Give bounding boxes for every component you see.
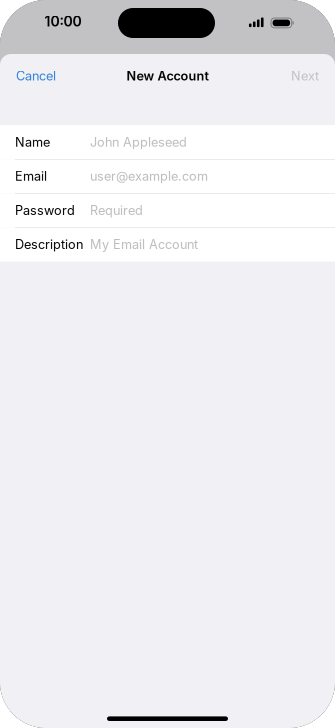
staticText: Description bbox=[15, 237, 83, 252]
staticText: Email bbox=[15, 168, 47, 184]
button[interactable]: Cancel bbox=[16, 68, 56, 84]
staticText: 10:00 bbox=[44, 13, 81, 30]
staticText: My Email Account bbox=[90, 237, 198, 252]
staticText: Cancel bbox=[16, 68, 56, 84]
button[interactable]: Next bbox=[291, 68, 319, 84]
staticText: John Appleseed bbox=[90, 134, 187, 150]
button[interactable]: Password bbox=[0, 193, 335, 227]
button[interactable]: Email bbox=[0, 159, 335, 193]
staticText: New Account bbox=[126, 68, 208, 84]
button[interactable]: Description bbox=[0, 227, 335, 261]
button[interactable]: Name bbox=[0, 125, 335, 159]
staticText: user@example.com bbox=[90, 168, 208, 184]
staticText: Name bbox=[15, 134, 50, 150]
staticText: Next bbox=[291, 68, 319, 84]
staticText: Password bbox=[15, 203, 75, 218]
staticText: Required bbox=[90, 203, 143, 218]
